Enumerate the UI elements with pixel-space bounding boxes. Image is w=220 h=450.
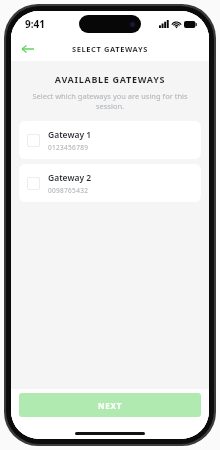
staticText: SELECT GATEWAYS xyxy=(72,44,148,54)
staticText: Select which gateways you are using for … xyxy=(21,91,199,111)
staticText: Gateway 2 xyxy=(48,172,92,184)
button[interactable]: Gateway 1 xyxy=(19,121,201,159)
button[interactable]: Gateway 2 xyxy=(19,164,201,202)
staticText: 0123456789 xyxy=(48,143,89,152)
staticText: 9:41 xyxy=(25,17,45,31)
button[interactable]: Back xyxy=(17,39,37,59)
staticText: Gateway 1 xyxy=(48,129,92,141)
staticText: NEXT xyxy=(98,400,123,411)
staticText: 0098765432 xyxy=(48,186,89,195)
staticText: AVAILABLE GATEWAYS xyxy=(11,73,209,85)
button[interactable]: NEXT xyxy=(19,393,201,417)
